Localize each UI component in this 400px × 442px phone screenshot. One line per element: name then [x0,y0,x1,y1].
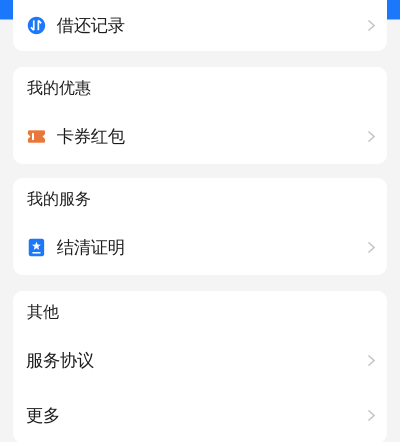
button[interactable]: 结清证明 [13,220,387,275]
staticText: 更多 [26,405,60,426]
staticText: 我的服务 [27,189,91,209]
button[interactable]: 更多 [13,388,387,442]
button[interactable]: 服务协议 [13,333,387,388]
staticText: 结清证明 [57,237,125,258]
staticText: 其他 [27,302,59,322]
staticText: 卡券红包 [57,126,125,147]
button[interactable]: 卡券红包 [13,109,387,164]
staticText: 我的优惠 [27,78,91,98]
staticText: 借还记录 [57,15,125,36]
staticText: 服务协议 [26,350,94,371]
button[interactable]: 借还记录 [13,0,387,53]
